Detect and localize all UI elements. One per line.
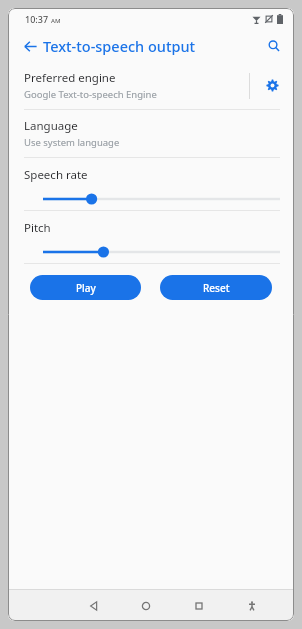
staticText: Reset <box>203 281 230 295</box>
staticText: 10:37 <box>25 13 49 25</box>
staticText: Text-to-speech output <box>43 36 196 56</box>
staticText: Google Text-to-speech Engine <box>24 88 157 101</box>
staticText: Speech rate <box>24 167 88 183</box>
button[interactable]: Search <box>262 34 286 58</box>
button[interactable]: Play <box>30 275 141 300</box>
staticText: AM <box>51 17 61 25</box>
staticText: Language <box>24 118 78 134</box>
button[interactable]: Back <box>18 34 42 58</box>
staticText: Preferred engine <box>24 70 116 86</box>
button[interactable]: Speech rate <box>8 158 294 210</box>
button[interactable]: Engine settings <box>250 62 294 109</box>
staticText: Use system language <box>24 136 120 149</box>
staticText: Pitch <box>24 220 51 236</box>
button[interactable]: Accessibility <box>225 590 278 621</box>
button[interactable]: Back <box>68 590 120 621</box>
staticText: Play <box>76 281 96 295</box>
button[interactable]: Preferred engine <box>8 62 294 109</box>
button[interactable]: Reset <box>160 275 272 300</box>
button[interactable]: Home <box>120 590 172 621</box>
button[interactable]: Recent apps <box>172 590 225 621</box>
button[interactable]: Language <box>8 110 294 157</box>
button[interactable]: Pitch <box>8 211 294 263</box>
